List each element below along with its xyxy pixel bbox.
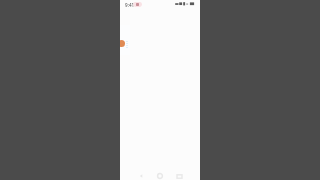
- button[interactable]: Recent apps: [172, 169, 186, 180]
- button[interactable]: Home: [153, 169, 167, 180]
- staticText: 9:41: [125, 2, 135, 8]
- button[interactable]: Contact card: [120, 25, 131, 55]
